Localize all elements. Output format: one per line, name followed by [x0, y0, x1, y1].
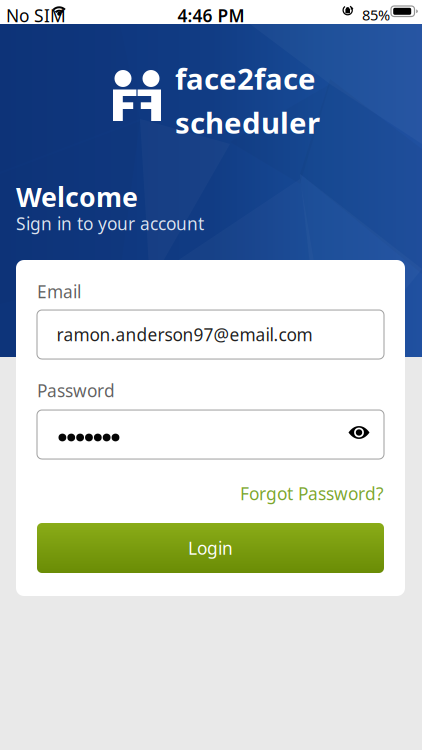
staticText: Login: [188, 536, 233, 559]
button[interactable]: Forgot Password?: [33, 476, 388, 511]
staticText: Sign in to your account: [16, 212, 204, 235]
button[interactable]: Show password: [343, 428, 364, 440]
button[interactable]: Login: [37, 523, 384, 573]
staticText: Email: [37, 280, 81, 303]
staticText: No SIM: [6, 4, 66, 27]
staticText: Password: [37, 379, 115, 402]
staticText: face2face: [175, 59, 316, 98]
staticText: scheduler: [175, 103, 320, 142]
staticText: Welcome: [16, 179, 138, 214]
staticText: 85%: [362, 5, 390, 24]
staticText: ramon.anderson97@email.com: [56, 323, 312, 346]
staticText: Forgot Password?: [240, 482, 384, 505]
staticText: 4:46 PM: [177, 4, 244, 27]
